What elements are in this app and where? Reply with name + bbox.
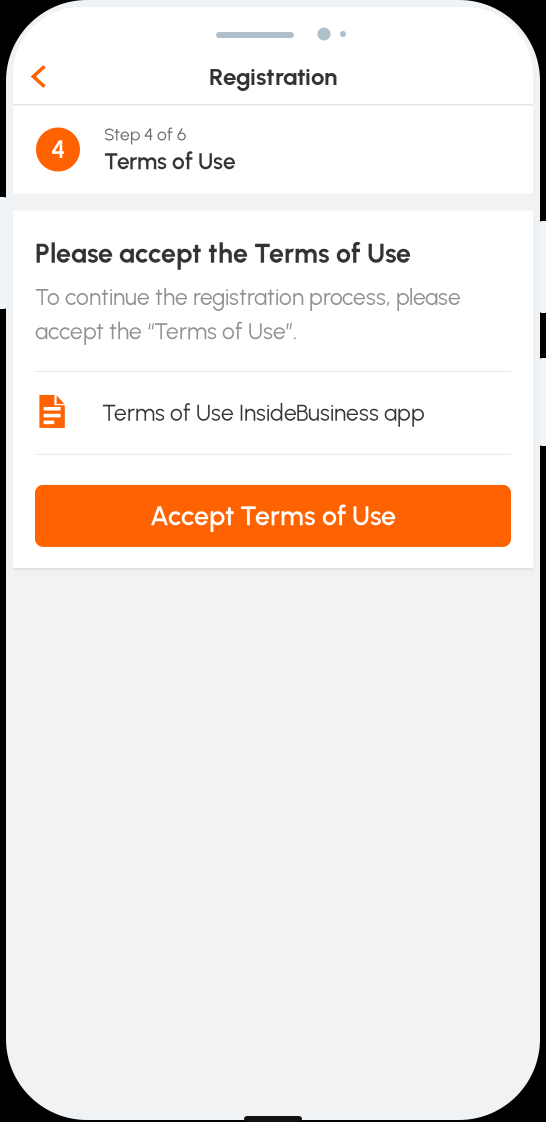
staticText: Terms of Use InsideBusiness app bbox=[102, 399, 425, 426]
button[interactable]: Accept Terms of Use bbox=[35, 485, 511, 547]
staticText: Please accept the Terms of Use bbox=[35, 237, 411, 269]
staticText: Accept Terms of Use bbox=[150, 500, 396, 532]
staticText: Terms of Use bbox=[104, 148, 236, 175]
staticText: Registration bbox=[209, 62, 337, 91]
staticText: 4 bbox=[51, 134, 65, 165]
staticText: Step 4 of 6 bbox=[104, 124, 186, 145]
button[interactable]: Back bbox=[13, 49, 65, 104]
staticText: To continue the registration process, pl… bbox=[35, 283, 461, 345]
button[interactable]: Terms of Use InsideBusiness app bbox=[35, 372, 511, 454]
